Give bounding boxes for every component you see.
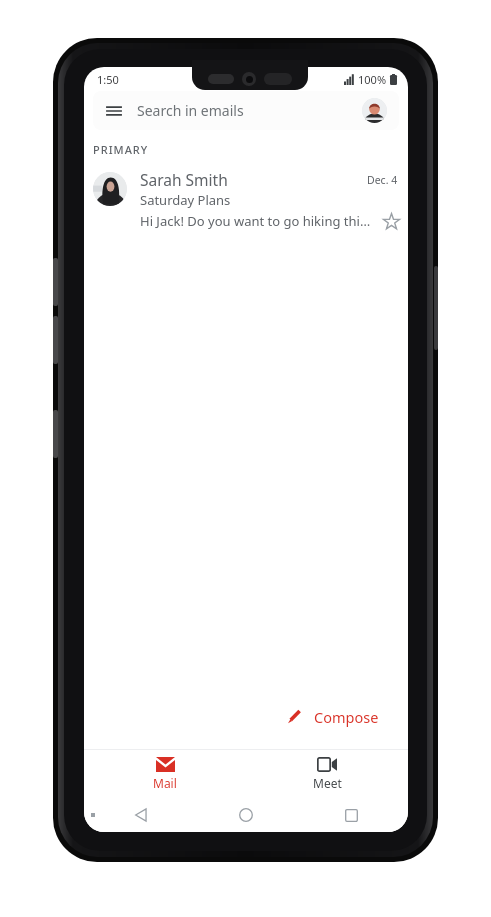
staticText: Search in emails xyxy=(137,101,244,120)
button[interactable]: Sender photo xyxy=(84,167,408,238)
staticText: Dec. 4 xyxy=(367,173,398,187)
staticText: 1:50 xyxy=(97,72,119,87)
staticText: Meet xyxy=(313,775,342,791)
button[interactable]: Recent apps xyxy=(336,800,366,830)
staticText: Compose xyxy=(314,707,379,727)
staticText: Sarah Smith xyxy=(140,169,367,190)
button[interactable]: Back xyxy=(126,800,156,830)
staticText: 100% xyxy=(358,72,387,87)
button[interactable]: Sender photo xyxy=(93,172,127,206)
button[interactable]: Account xyxy=(362,98,387,123)
button[interactable]: Meet xyxy=(246,750,408,798)
button[interactable]: Star email xyxy=(380,210,402,232)
button[interactable]: Home xyxy=(231,800,261,830)
staticText: Hi Jack! Do you want to go hiking this w… xyxy=(140,212,376,230)
button[interactable]: Mail xyxy=(84,750,246,798)
button[interactable]: Compose xyxy=(269,698,396,735)
button[interactable]: Open navigation menu xyxy=(93,91,399,130)
staticText: Mail xyxy=(153,775,177,791)
staticText: Saturday Plans xyxy=(140,191,231,209)
other: Open navigation menu xyxy=(105,102,123,120)
staticText: PRIMARY xyxy=(93,142,149,157)
